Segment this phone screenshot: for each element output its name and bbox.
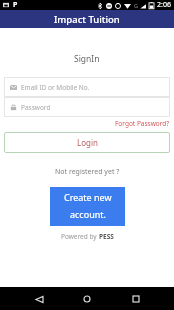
staticText: PESS <box>99 232 114 241</box>
staticText: Login <box>77 137 98 148</box>
button[interactable]: Email ID or Mobile No. <box>4 77 170 97</box>
staticText: 2:06 <box>157 0 171 10</box>
staticText: account. <box>70 208 106 220</box>
staticText: G <box>134 2 139 9</box>
staticText: Not registered yet ? <box>55 167 120 177</box>
staticText: SignIn <box>74 53 100 65</box>
button[interactable]: Forgot Password? <box>115 118 170 129</box>
button[interactable]: Recents <box>126 289 146 309</box>
button[interactable]: Back <box>29 289 49 309</box>
staticText: Create new <box>64 191 112 203</box>
staticText: Password <box>21 103 51 112</box>
button[interactable]: Password <box>4 97 170 117</box>
button[interactable]: Login <box>4 132 170 153</box>
staticText: Impact Tuition <box>54 13 120 26</box>
button[interactable]: Home <box>77 289 97 309</box>
staticText: Powered by <box>61 232 99 241</box>
staticText: P <box>13 0 18 10</box>
staticText: Email ID or Mobile No. <box>21 83 90 92</box>
button[interactable]: Create new <box>50 187 125 226</box>
